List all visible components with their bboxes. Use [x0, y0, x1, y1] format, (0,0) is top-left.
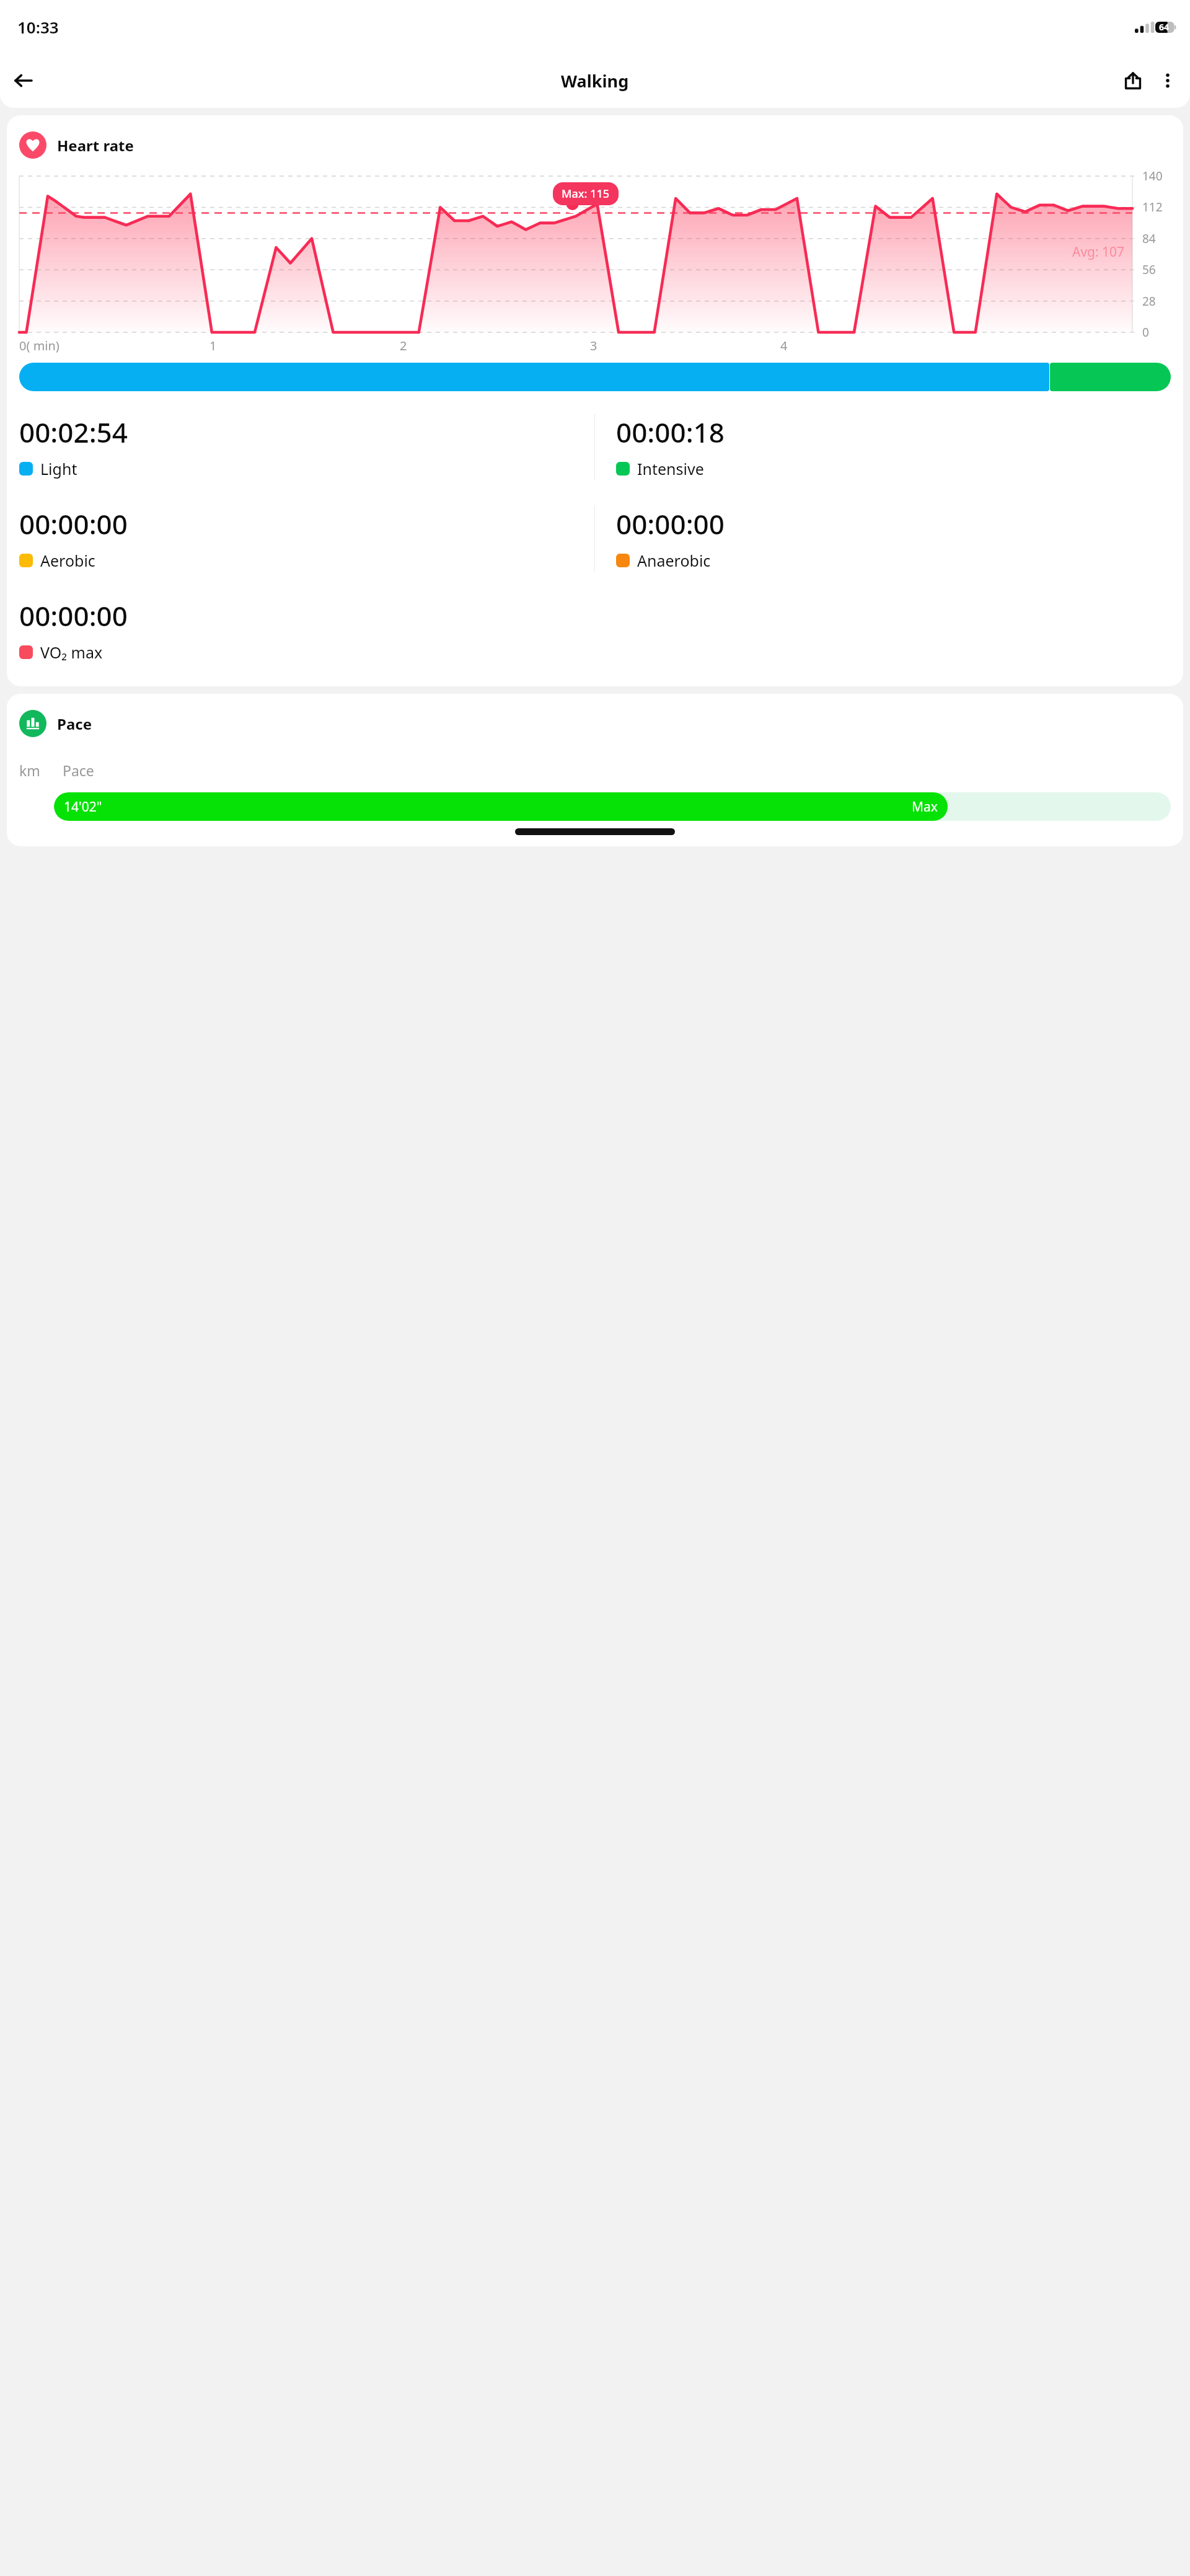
- staticText: Max: [912, 798, 938, 816]
- staticText: 4: [780, 337, 788, 354]
- staticText: Aerobic: [40, 550, 95, 571]
- staticText: Light: [40, 458, 77, 479]
- staticText: 64: [1159, 21, 1170, 33]
- staticText: km: [19, 761, 40, 780]
- staticText: 28: [1142, 293, 1171, 309]
- staticText: 00:00:00: [19, 505, 128, 542]
- staticText: 1: [209, 337, 217, 354]
- staticText: 0( min): [19, 337, 59, 354]
- staticText: 56: [1142, 262, 1171, 278]
- staticText: 112: [1142, 199, 1171, 215]
- staticText: Intensive: [637, 458, 704, 479]
- staticText: 2: [400, 337, 407, 354]
- staticText: Anaerobic: [637, 550, 711, 571]
- staticText: 00:00:00: [19, 597, 128, 634]
- staticText: VO₂ max: [40, 642, 103, 663]
- staticText: 140: [1142, 168, 1171, 184]
- staticText: Pace: [57, 714, 92, 734]
- staticText: 84: [1142, 231, 1171, 247]
- staticText: 10:33: [17, 16, 59, 38]
- staticText: Pace: [63, 761, 94, 780]
- staticText: 00:00:00: [616, 505, 725, 542]
- staticText: Avg: 107: [1072, 243, 1125, 261]
- staticText: 00:02:54: [19, 414, 128, 451]
- staticText: 0: [1142, 324, 1171, 340]
- staticText: Heart rate: [57, 135, 134, 156]
- staticText: Max: 115: [562, 186, 610, 201]
- button[interactable]: Back: [6, 63, 41, 98]
- button[interactable]: More options: [1150, 63, 1185, 98]
- staticText: 3: [590, 337, 597, 354]
- button[interactable]: Share: [1116, 63, 1150, 98]
- staticText: 14'02": [64, 798, 102, 816]
- staticText: Walking: [561, 69, 629, 92]
- staticText: 00:00:18: [616, 414, 725, 451]
